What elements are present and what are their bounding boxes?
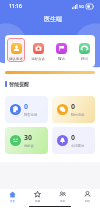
button[interactable]: 0 — [5, 96, 48, 123]
staticText: 呼叫 — [81, 57, 88, 61]
staticText: 医生端 — [44, 15, 62, 23]
button[interactable]: 随访 — [52, 38, 70, 62]
staticText: 11:16 — [9, 3, 22, 10]
button[interactable]: 远程会诊 — [29, 38, 47, 62]
button[interactable]: 确认患者 — [7, 38, 25, 62]
staticText: 收藏 — [35, 199, 41, 202]
staticText: 5G — [79, 4, 85, 9]
button[interactable]: 0 — [52, 96, 95, 123]
staticText: 首页 — [10, 199, 16, 202]
button[interactable]: 我的 — [75, 189, 100, 203]
button[interactable]: 患者 — [50, 189, 75, 203]
staticText: 0 — [24, 102, 29, 112]
staticText: 智能提醒 — [9, 81, 29, 87]
staticText: 0 — [71, 133, 76, 143]
staticText: 患者 — [60, 199, 66, 202]
button[interactable]: 呼叫 — [75, 38, 93, 62]
staticText: 随访 — [58, 57, 65, 61]
button[interactable]: 0 — [52, 127, 95, 154]
staticText: 报告待阅 — [24, 113, 38, 117]
button[interactable]: 首页 — [0, 189, 25, 203]
button[interactable]: 30 — [5, 127, 48, 154]
staticText: 确认患者 — [9, 57, 23, 61]
staticText: 今日随访 — [71, 144, 85, 148]
staticText: 院内消息 — [71, 113, 85, 117]
button[interactable]: 收藏 — [25, 189, 50, 203]
staticText: 危机值 — [24, 144, 34, 148]
staticText: 0 — [71, 102, 76, 112]
button[interactable]: Banner — [5, 71, 95, 74]
staticText: 30 — [24, 133, 33, 143]
staticText: 远程会诊 — [31, 57, 45, 61]
staticText: 我的 — [85, 199, 91, 202]
